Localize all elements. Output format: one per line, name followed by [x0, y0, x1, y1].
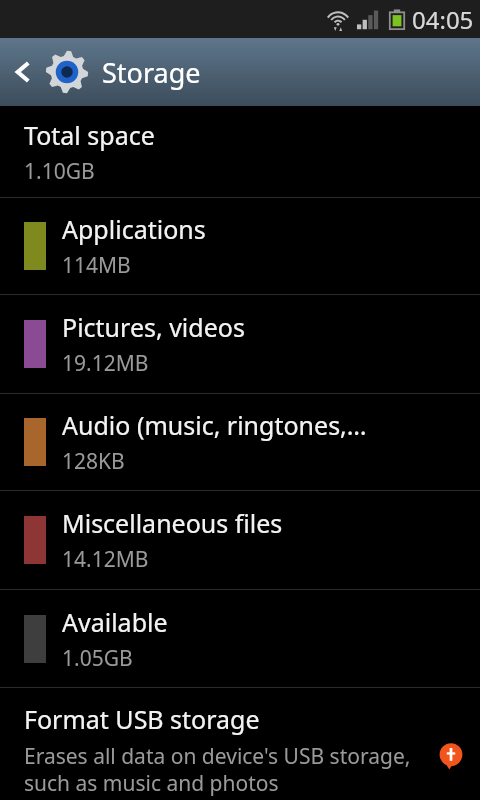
other: Signal [357, 9, 381, 31]
button[interactable]: Available [0, 590, 480, 687]
staticText: Storage [102, 54, 201, 91]
button[interactable]: Audio (music, ringtones,… [0, 394, 480, 490]
staticText: Available [62, 605, 168, 639]
staticText: Format USB storage [24, 702, 260, 736]
staticText: 114MB [62, 251, 131, 280]
staticText: Applications [62, 212, 206, 246]
button[interactable]: Applications [0, 198, 480, 294]
button[interactable]: Back [0, 38, 480, 106]
other: Back [12, 57, 34, 87]
staticText: 14.12MB [62, 545, 149, 574]
button[interactable]: Pictures, videos [0, 295, 480, 393]
staticText: 1.10GB [24, 157, 95, 186]
button[interactable]: Format USB storage [0, 688, 480, 798]
staticText: 04:05 [412, 3, 474, 36]
staticText: Audio (music, ringtones,… [62, 408, 367, 442]
staticText: 128KB [62, 447, 125, 476]
other: Battery [387, 8, 407, 32]
staticText: Pictures, videos [62, 310, 245, 344]
other: Wi-Fi [325, 8, 351, 32]
staticText: 19.12MB [62, 349, 149, 378]
staticText: Erases all data on device's USB storage,… [24, 742, 424, 797]
button[interactable]: Tip [436, 742, 466, 772]
staticText: Miscellaneous files [62, 506, 283, 540]
staticText: 1.05GB [62, 644, 133, 673]
button[interactable]: Miscellaneous files [0, 491, 480, 589]
staticText: Total space [24, 118, 155, 152]
button[interactable]: Total space [0, 106, 480, 197]
